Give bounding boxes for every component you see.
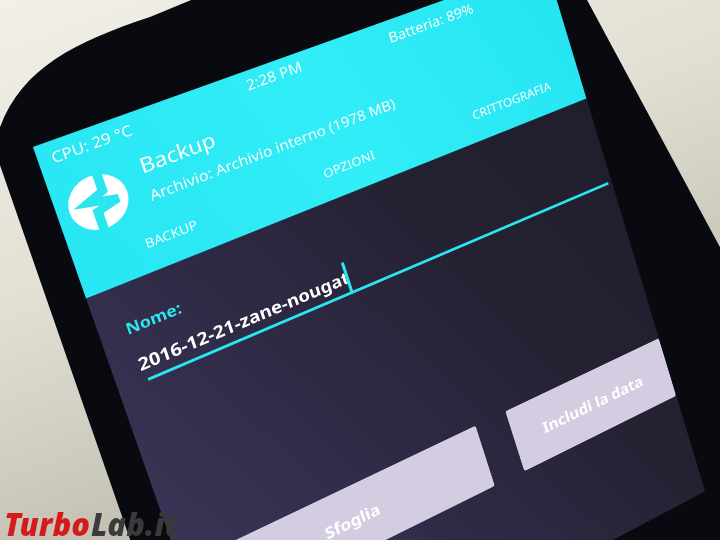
- button[interactable]: OPZIONI: [259, 120, 435, 210]
- staticText: Turbo: [4, 503, 91, 540]
- staticText: CPU: 29 °C: [48, 119, 134, 165]
- staticText: 2:28 PM: [243, 56, 304, 93]
- staticText: Archivio: Archivio interno (1978 MB): [147, 93, 398, 205]
- staticText: BACKUP: [142, 215, 201, 252]
- staticText: CRITTOGRAFIA: [470, 77, 553, 123]
- other: App icon: [61, 166, 136, 239]
- staticText: Lab.it: [91, 503, 179, 540]
- staticText: OPZIONI: [321, 146, 378, 182]
- button[interactable]: Includi la data: [505, 338, 676, 471]
- staticText: Batteria: 89%: [386, 0, 475, 45]
- staticText: Sfoglia: [322, 498, 383, 540]
- button[interactable]: BACKUP: [72, 186, 266, 283]
- staticText: 2016-12-21-zane-nougat: [134, 265, 353, 376]
- staticText: Includi la data: [540, 370, 645, 438]
- staticText: Nome:: [122, 297, 184, 340]
- button[interactable]: CRITTOGRAFIA: [429, 60, 591, 143]
- staticText: Backup: [135, 125, 219, 179]
- button[interactable]: Sfoglia: [198, 425, 495, 540]
